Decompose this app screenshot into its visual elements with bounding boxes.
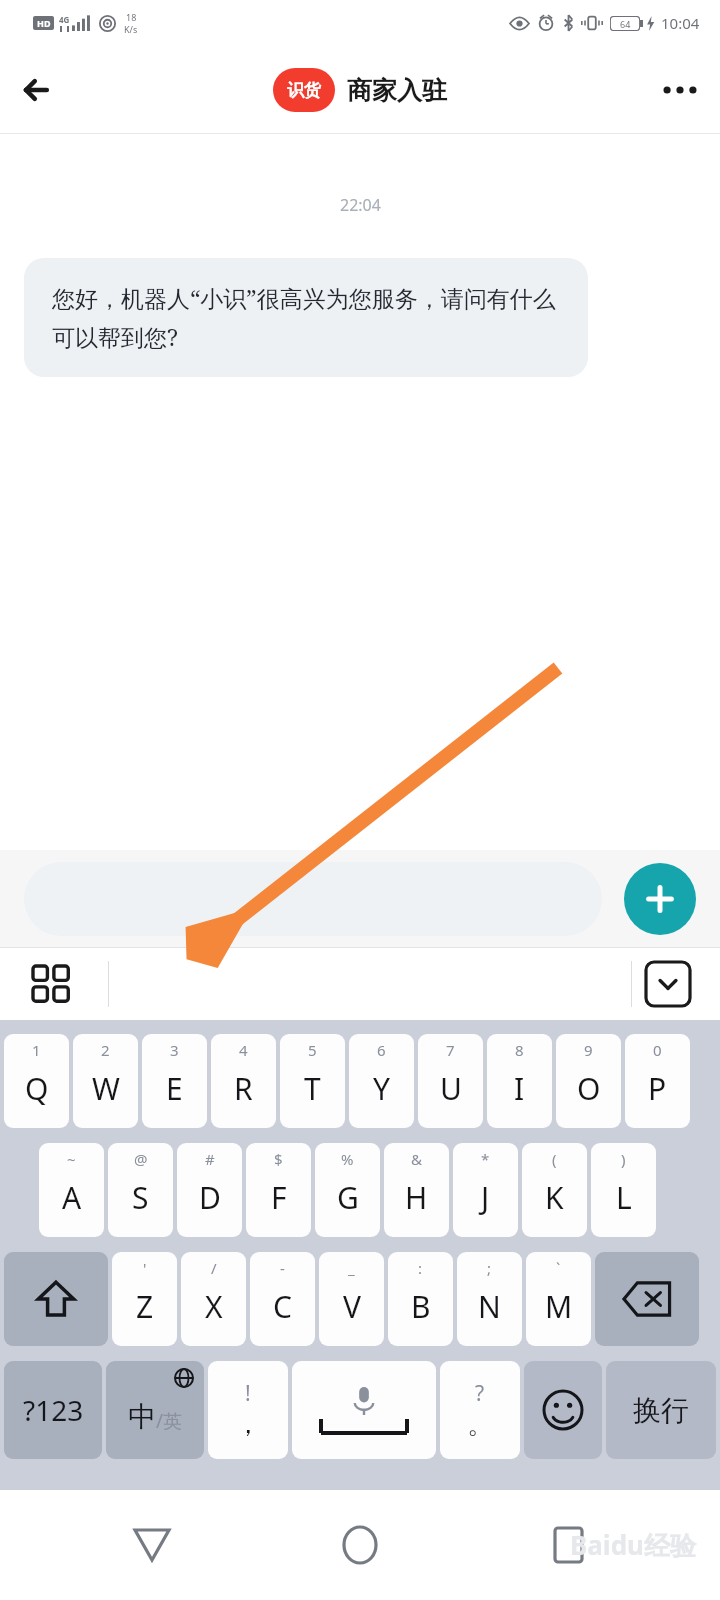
button[interactable]: : [388,1252,453,1346]
staticText: D [199,1177,221,1218]
button[interactable]: Backspace [595,1252,699,1346]
staticText: Q [25,1068,49,1109]
staticText: H [405,1177,428,1218]
button[interactable]: 2 [73,1034,138,1128]
button[interactable]: Quick replies [22,955,80,1013]
staticText: : [418,1258,423,1278]
staticText: 3 [170,1040,179,1060]
staticText: 5 [308,1040,317,1060]
button[interactable]: 3 [142,1034,207,1128]
staticText: 22:04 [340,194,381,216]
staticText: # [205,1149,215,1169]
staticText: Y [373,1068,390,1109]
staticText: ; [487,1258,492,1278]
button[interactable]: * [453,1143,518,1237]
staticText: ， [235,1408,261,1441]
staticText: ? [475,1379,485,1408]
staticText: L [616,1177,632,1218]
button[interactable]: # [177,1143,242,1237]
staticText: & [411,1149,422,1169]
button[interactable]: Message input [24,862,602,936]
staticText: 识货 [287,80,321,101]
button[interactable]: 您好，机器人“小识”很高兴为您服务，请问有什么可以帮到您? [24,258,588,377]
button[interactable]: Emoji [524,1361,602,1459]
staticText: A [62,1177,82,1218]
staticText: - [280,1258,285,1278]
staticText: F [271,1177,287,1218]
staticText: _ [348,1258,355,1278]
button[interactable]: ' [112,1252,177,1346]
staticText: ` [556,1258,561,1278]
button[interactable]: & [384,1143,449,1237]
button[interactable]: 9 [556,1034,621,1128]
staticText: G [337,1177,359,1218]
button[interactable]: - [250,1252,315,1346]
staticText: T [304,1068,321,1109]
staticText: K [545,1177,564,1218]
button[interactable]: Back [120,1513,184,1577]
button[interactable]: / [181,1252,246,1346]
staticText: /英 [156,1408,183,1434]
button[interactable]: ` [526,1252,591,1346]
button[interactable]: ) [591,1143,656,1237]
button[interactable]: Back [10,64,62,116]
button[interactable]: Switch language [106,1361,204,1459]
staticText: @ [134,1149,148,1169]
button[interactable]: 6 [349,1034,414,1128]
staticText: 商家入驻 [347,75,447,106]
staticText: N [478,1286,501,1327]
staticText: U [440,1068,462,1109]
button[interactable]: 换行 [606,1361,716,1459]
staticText: B [411,1286,431,1327]
staticText: 64 [620,18,631,30]
staticText: C [273,1286,292,1327]
button[interactable]: Home [328,1513,392,1577]
staticText: 8 [515,1040,524,1060]
button[interactable]: Collapse keyboard [640,956,696,1012]
staticText: 2 [101,1040,110,1060]
staticText: P [648,1068,667,1109]
button[interactable]: More options [654,64,706,116]
staticText: S [132,1177,149,1218]
staticText: / [211,1258,217,1278]
button[interactable]: ~ [39,1143,104,1237]
button[interactable]: @ [108,1143,173,1237]
staticText: X [205,1286,223,1327]
button[interactable]: 4 [211,1034,276,1128]
button[interactable]: $ [246,1143,311,1237]
button[interactable]: Add [624,863,696,935]
staticText: 1 [32,1040,41,1060]
staticText: 。 [467,1408,493,1441]
button[interactable]: 1 [4,1034,69,1128]
button[interactable]: ; [457,1252,522,1346]
button[interactable]: 0 [625,1034,690,1128]
staticText: 7 [446,1040,455,1060]
staticText: 18 [126,11,137,23]
staticText: 中 [128,1399,156,1434]
staticText: M [545,1286,573,1327]
button[interactable]: ?123 [4,1361,102,1459]
staticText: 您好，机器人“小识”很高兴为您服务，请问有什么可以帮到您? [52,282,560,353]
staticText: $ [274,1149,283,1169]
button[interactable]: % [315,1143,380,1237]
button[interactable]: Recents [536,1513,600,1577]
staticText: 10:04 [661,13,700,33]
staticText: I [514,1068,525,1109]
staticText: K/s [124,23,138,35]
button[interactable]: 8 [487,1034,552,1128]
staticText: J [481,1177,490,1218]
staticText: ) [621,1149,626,1169]
button[interactable]: 7 [418,1034,483,1128]
button[interactable]: ! [208,1361,288,1459]
button[interactable]: _ [319,1252,384,1346]
staticText: R [234,1068,253,1109]
staticText: 9 [584,1040,593,1060]
button[interactable]: ( [522,1143,587,1237]
button[interactable]: Space [292,1361,436,1459]
staticText: ' [143,1258,147,1278]
staticText: * [481,1149,490,1169]
button[interactable]: Shift [4,1252,108,1346]
button[interactable]: 5 [280,1034,345,1128]
button[interactable]: ? [440,1361,520,1459]
staticText: 4 [239,1040,248,1060]
